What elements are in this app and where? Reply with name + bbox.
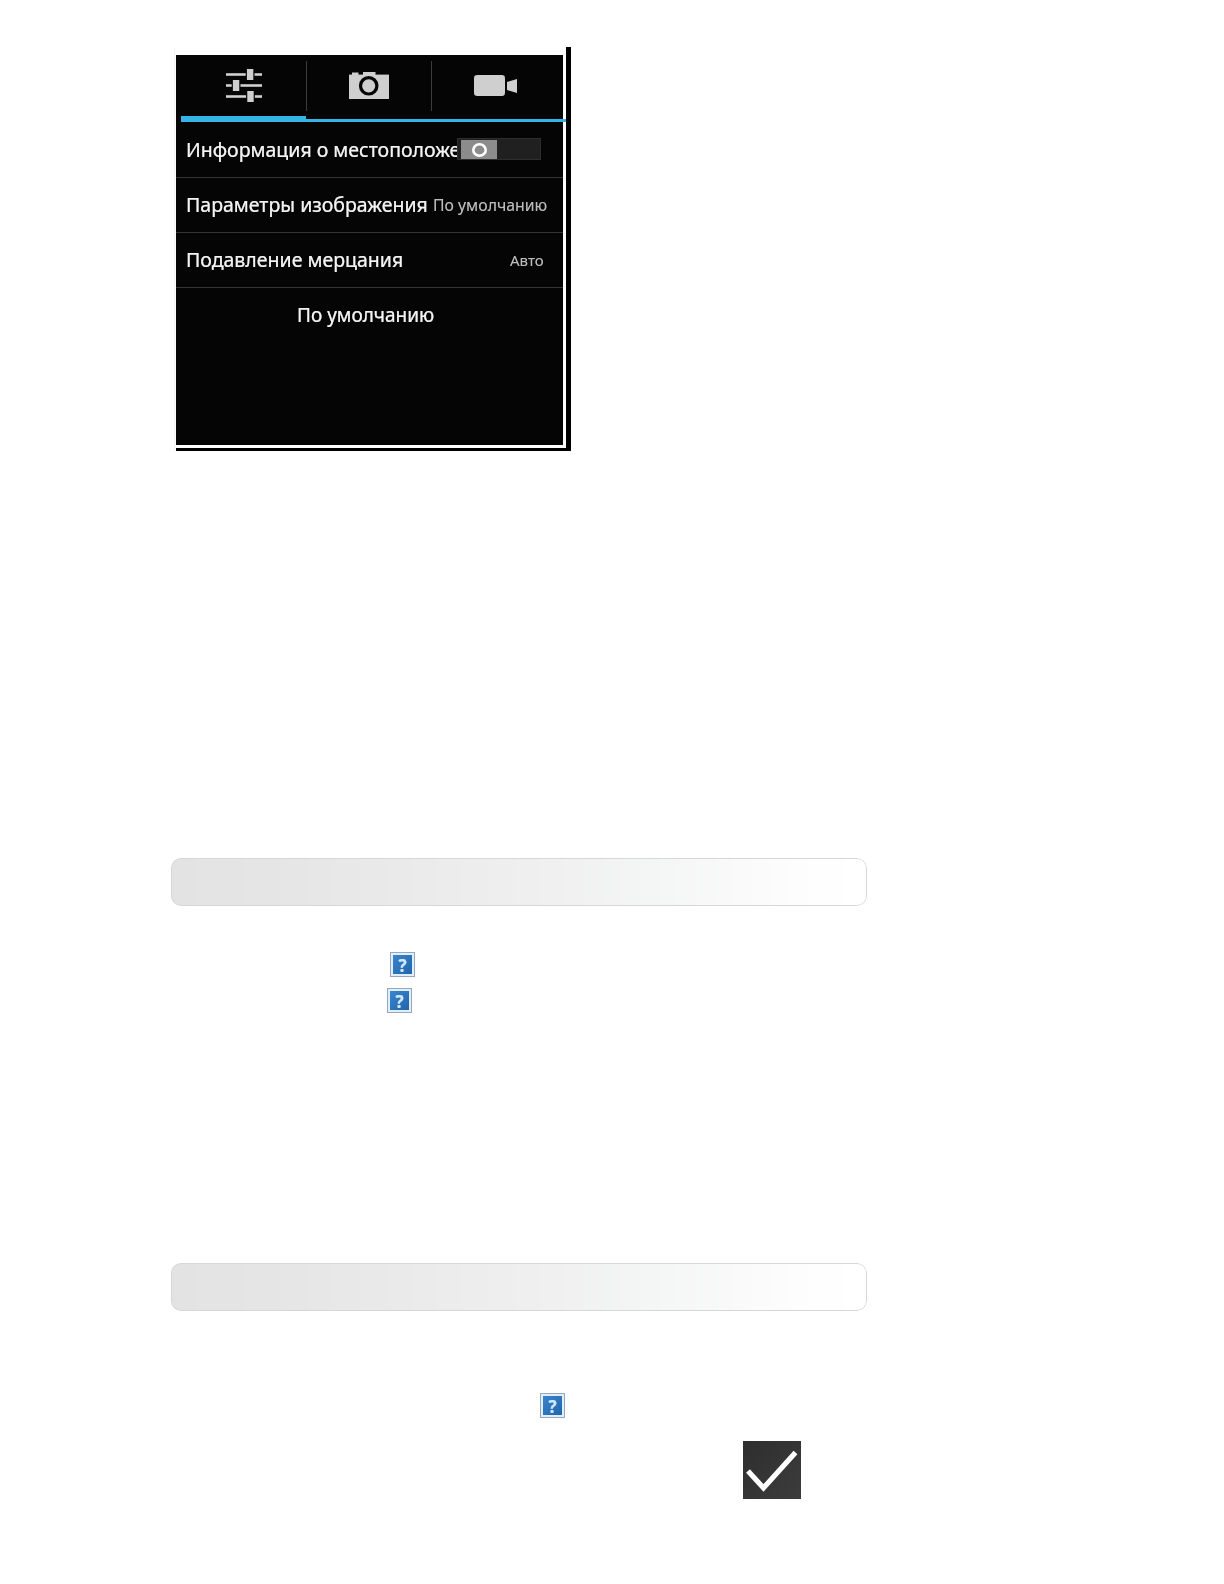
button[interactable]: Photo camera settings tab [305,55,434,114]
staticText: По умолчанию [433,194,548,216]
button[interactable]: Video camera settings tab [434,55,563,114]
button[interactable]: Подавление мерцания [176,233,563,287]
staticText: Подавление мерцания [186,246,404,273]
staticText: ? [395,990,404,1009]
staticText: По умолчанию [297,302,435,328]
button[interactable]: General settings tab [176,55,305,114]
staticText: Информация о местоположении [186,136,457,163]
button[interactable]: Done [743,1441,801,1499]
staticText: Авто [510,250,544,270]
button[interactable]: Параметры изображения [176,178,563,232]
staticText: ? [398,954,407,973]
button[interactable]: Информация о местоположении [176,123,563,177]
button[interactable]: Location information toggle [457,138,541,160]
staticText: Параметры изображения [186,191,428,218]
staticText: ? [548,1395,557,1414]
